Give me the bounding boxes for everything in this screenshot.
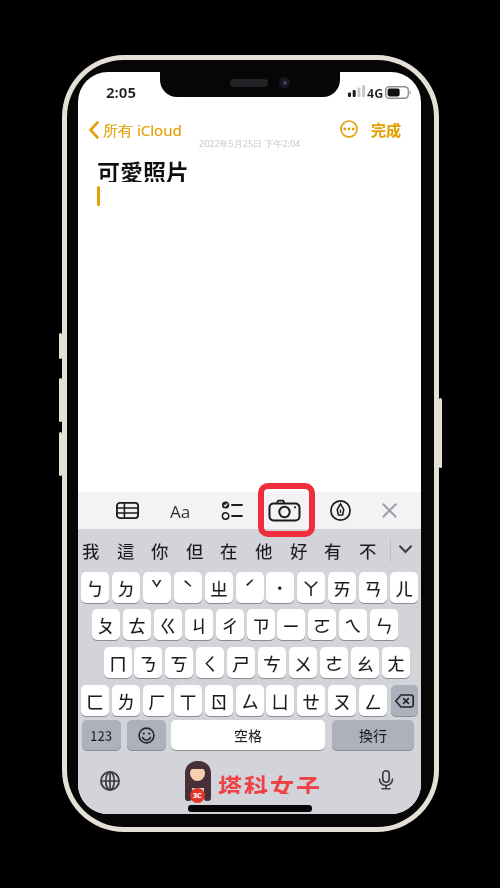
staticText: ㄓ bbox=[210, 575, 228, 601]
button[interactable]: ㄎ bbox=[165, 647, 193, 678]
button[interactable] bbox=[378, 770, 394, 791]
button[interactable]: 你 bbox=[144, 538, 176, 562]
button[interactable] bbox=[268, 499, 301, 522]
button[interactable]: ㄍ bbox=[154, 609, 182, 640]
button[interactable]: 這 bbox=[110, 538, 142, 562]
button[interactable]: ㄇ bbox=[104, 647, 132, 678]
button[interactable]: ˋ bbox=[174, 572, 202, 603]
staticText: ㄩ bbox=[271, 688, 289, 714]
button[interactable]: ㄢ bbox=[359, 572, 387, 603]
staticText: ㄈ bbox=[86, 688, 104, 714]
button[interactable]: ㄩ bbox=[266, 685, 294, 716]
button[interactable]: ㄧ bbox=[277, 609, 305, 640]
button[interactable]: ˇ bbox=[143, 572, 171, 603]
staticText: ㄔ bbox=[221, 612, 239, 638]
staticText: ㄗ bbox=[252, 612, 270, 638]
button[interactable]: 他 bbox=[248, 538, 280, 562]
button[interactable] bbox=[398, 544, 413, 555]
button[interactable]: ㄜ bbox=[320, 647, 348, 678]
button[interactable]: ㄨ bbox=[289, 647, 317, 678]
button[interactable] bbox=[330, 500, 351, 521]
button[interactable]: 所有 iCloud bbox=[103, 119, 223, 140]
staticText: ㄆ bbox=[97, 612, 115, 638]
button[interactable]: ㄒ bbox=[174, 685, 202, 716]
staticText: 所有 iCloud bbox=[103, 120, 182, 140]
button[interactable]: 空格 bbox=[171, 720, 325, 750]
button[interactable]: 123 bbox=[82, 720, 121, 750]
button[interactable]: 不 bbox=[352, 538, 384, 562]
button[interactable]: ㄉ bbox=[112, 572, 140, 603]
staticText: 他 bbox=[255, 538, 273, 562]
staticText: 不 bbox=[359, 538, 377, 562]
button[interactable]: ㄛ bbox=[308, 609, 336, 640]
staticText: 換行 bbox=[359, 725, 387, 745]
button[interactable]: ㄑ bbox=[196, 647, 224, 678]
button[interactable]: ㄦ bbox=[390, 572, 418, 603]
staticText: ㄅ bbox=[86, 575, 104, 601]
button[interactable]: ㄡ bbox=[328, 685, 356, 716]
button[interactable]: ㄖ bbox=[205, 685, 233, 716]
button[interactable] bbox=[340, 120, 358, 138]
button[interactable]: 塔科女子 bbox=[218, 768, 408, 794]
button[interactable]: ㄙ bbox=[236, 685, 264, 716]
button[interactable]: ㄝ bbox=[297, 685, 325, 716]
button[interactable]: 在 bbox=[213, 538, 245, 562]
button[interactable]: ㄚ bbox=[297, 572, 325, 603]
staticText: ㄠ bbox=[356, 650, 374, 676]
button[interactable]: 但 bbox=[179, 538, 211, 562]
staticText: Aa bbox=[170, 500, 191, 521]
button[interactable] bbox=[88, 121, 100, 139]
button[interactable]: ㄔ bbox=[216, 609, 244, 640]
staticText: ㄝ bbox=[302, 688, 320, 714]
button[interactable] bbox=[381, 502, 398, 519]
button[interactable]: ㄐ bbox=[185, 609, 213, 640]
button[interactable]: ㄕ bbox=[227, 647, 255, 678]
button[interactable]: 有 bbox=[317, 538, 349, 562]
button[interactable]: 完成 bbox=[368, 119, 404, 140]
staticText: ㄖ bbox=[210, 688, 228, 714]
button[interactable]: ㄅ bbox=[81, 572, 109, 603]
button[interactable] bbox=[221, 499, 243, 522]
staticText: ㄍ bbox=[159, 612, 177, 638]
button[interactable]: ㄞ bbox=[328, 572, 356, 603]
button[interactable]: 換行 bbox=[332, 720, 414, 750]
staticText: 有 bbox=[324, 538, 342, 562]
staticText: 你 bbox=[151, 538, 169, 562]
button[interactable]: ㄤ bbox=[382, 647, 410, 678]
button[interactable]: ㄋ bbox=[134, 647, 162, 678]
staticText: 我 bbox=[82, 538, 100, 562]
staticText: 3C bbox=[193, 791, 202, 801]
staticText: ㄨ bbox=[294, 650, 312, 676]
button[interactable]: ㄥ bbox=[359, 685, 387, 716]
button[interactable]: ㄏ bbox=[143, 685, 171, 716]
button[interactable]: ˙ bbox=[266, 572, 294, 603]
button[interactable] bbox=[127, 720, 166, 750]
button[interactable] bbox=[100, 771, 120, 791]
staticText: ㄜ bbox=[325, 650, 343, 676]
button[interactable]: ㄌ bbox=[112, 685, 140, 716]
staticText: 2022年5月25日 下午2:04 bbox=[199, 137, 301, 149]
button[interactable]: ㄗ bbox=[247, 609, 275, 640]
staticText: ㄕ bbox=[232, 650, 250, 676]
staticText: 好 bbox=[290, 538, 308, 562]
button[interactable]: 我 bbox=[78, 538, 107, 562]
button[interactable] bbox=[258, 483, 315, 537]
button[interactable]: 好 bbox=[283, 538, 315, 562]
staticText: ㄑ bbox=[201, 650, 219, 676]
button[interactable]: ㄟ bbox=[339, 609, 367, 640]
button[interactable]: ㄈ bbox=[81, 685, 109, 716]
button[interactable]: ㄊ bbox=[123, 609, 151, 640]
button[interactable]: ㄠ bbox=[351, 647, 379, 678]
staticText: ˊ bbox=[244, 574, 256, 602]
button[interactable]: ㄣ bbox=[370, 609, 398, 640]
button[interactable]: ㄘ bbox=[258, 647, 286, 678]
staticText: ㄧ bbox=[282, 612, 300, 638]
button[interactable]: ㄆ bbox=[92, 609, 120, 640]
button[interactable]: Aa bbox=[164, 500, 196, 521]
button[interactable] bbox=[114, 500, 141, 521]
button[interactable] bbox=[391, 685, 418, 716]
button[interactable]: ˊ bbox=[236, 572, 264, 603]
staticText: ㄥ bbox=[364, 688, 382, 714]
button[interactable]: ㄓ bbox=[205, 572, 233, 603]
staticText: 這 bbox=[117, 538, 135, 562]
